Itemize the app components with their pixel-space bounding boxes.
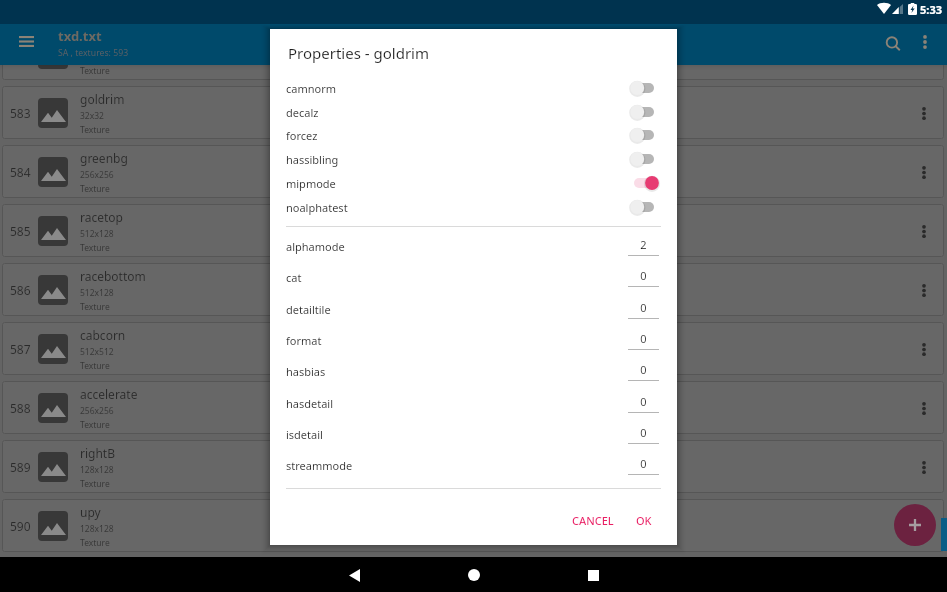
staticText: 587 xyxy=(10,341,31,357)
staticText: 0 xyxy=(628,394,659,409)
button[interactable]: Back xyxy=(337,558,371,592)
button[interactable]: 584 xyxy=(2,145,944,198)
button[interactable]: Toggle xyxy=(626,78,654,98)
staticText: 583 xyxy=(10,105,31,121)
staticText: isdetail xyxy=(286,427,323,442)
staticText: Texture xyxy=(80,65,110,77)
staticText: 585 xyxy=(10,223,31,239)
staticText: 0 xyxy=(628,331,659,346)
staticText: detailtile xyxy=(286,302,331,317)
button[interactable]: Open navigation drawer xyxy=(9,28,43,62)
staticText: 586 xyxy=(10,282,31,298)
button[interactable]: Item options xyxy=(904,447,944,487)
button[interactable]: Home xyxy=(457,558,491,592)
button[interactable]: Add xyxy=(894,504,936,546)
button[interactable]: Item options xyxy=(904,211,944,251)
button[interactable]: 586 xyxy=(2,263,944,316)
button[interactable]: Search xyxy=(873,24,914,65)
staticText: rightB xyxy=(80,445,115,461)
staticText: Texture xyxy=(80,419,110,431)
staticText: 582 xyxy=(10,46,31,62)
staticText: 584 xyxy=(10,164,31,180)
button[interactable]: mipmode xyxy=(286,171,654,195)
staticText: greenbg xyxy=(80,150,128,166)
button[interactable]: Item options xyxy=(904,93,944,133)
staticText: racebottom xyxy=(80,268,146,284)
staticText: camnorm xyxy=(286,81,337,96)
button[interactable]: forcez xyxy=(286,123,654,147)
staticText: CANCEL xyxy=(572,513,614,528)
staticText: xxx xyxy=(80,32,100,48)
staticText: 5:33 xyxy=(920,2,942,17)
staticText: 128x128 xyxy=(80,464,114,476)
button[interactable]: Toggle xyxy=(626,102,654,122)
staticText: cabcorn xyxy=(80,327,126,343)
staticText: 2 xyxy=(628,237,659,252)
staticText: 64x64 xyxy=(80,51,104,63)
button[interactable]: Toggle xyxy=(626,149,654,169)
button[interactable]: CANCEL xyxy=(562,505,624,536)
button[interactable]: 585 xyxy=(2,204,944,257)
staticText: 589 xyxy=(10,459,31,475)
button[interactable]: camnorm xyxy=(286,76,654,100)
staticText: 0 xyxy=(628,300,659,315)
button[interactable]: Item options xyxy=(904,329,944,369)
button[interactable]: noalphatest xyxy=(286,195,654,219)
staticText: 0 xyxy=(628,425,659,440)
staticText: 256x256 xyxy=(80,169,114,181)
staticText: 512x128 xyxy=(80,287,114,299)
button[interactable]: Recents xyxy=(576,558,610,592)
staticText: OK xyxy=(636,513,652,528)
staticText: 256x256 xyxy=(80,405,114,417)
button[interactable]: hassibling xyxy=(286,147,654,171)
button[interactable]: 587 xyxy=(2,322,944,375)
staticText: 588 xyxy=(10,400,31,416)
button[interactable]: 590 xyxy=(2,499,944,552)
staticText: 0 xyxy=(628,362,659,377)
staticText: upy xyxy=(80,504,101,520)
staticText: alphamode xyxy=(286,239,345,254)
staticText: decalz xyxy=(286,105,319,120)
button[interactable]: Item options xyxy=(904,388,944,428)
button[interactable]: 582 xyxy=(2,27,944,80)
staticText: hasbias xyxy=(286,364,326,379)
button[interactable]: 588 xyxy=(2,381,944,434)
button[interactable]: 589 xyxy=(2,440,944,493)
staticText: 128x128 xyxy=(80,523,114,535)
staticText: Texture xyxy=(80,537,110,549)
button[interactable]: Toggle xyxy=(626,125,654,145)
staticText: forcez xyxy=(286,128,318,143)
staticText: noalphatest xyxy=(286,200,348,215)
staticText: SA , textures: 593 xyxy=(58,47,129,59)
button[interactable]: More options xyxy=(904,21,945,62)
staticText: Texture xyxy=(80,360,110,372)
button[interactable]: Item options xyxy=(904,34,944,74)
staticText: Texture xyxy=(80,478,110,490)
button[interactable]: OK xyxy=(626,505,662,536)
staticText: Texture xyxy=(80,242,110,254)
button[interactable]: 583 xyxy=(2,86,944,139)
staticText: streammode xyxy=(286,458,353,473)
staticText: cat xyxy=(286,270,302,285)
staticText: Texture xyxy=(80,183,110,195)
staticText: mipmode xyxy=(286,176,336,191)
button[interactable]: Toggle xyxy=(626,197,654,217)
button[interactable]: Item options xyxy=(904,152,944,192)
staticText: accelerate xyxy=(80,386,138,402)
staticText: 0 xyxy=(628,456,659,471)
staticText: 512x512 xyxy=(80,346,114,358)
button[interactable]: Toggle xyxy=(626,173,654,193)
staticText: 0 xyxy=(628,268,659,283)
staticText: hasdetail xyxy=(286,396,334,411)
button[interactable]: Item options xyxy=(904,506,944,546)
staticText: racetop xyxy=(80,209,123,225)
staticText: Properties - goldrim xyxy=(288,43,429,63)
staticText: hassibling xyxy=(286,152,339,167)
staticText: txd.txt xyxy=(58,27,102,45)
staticText: 32x32 xyxy=(80,110,104,122)
button[interactable]: decalz xyxy=(286,100,654,124)
staticText: 512x128 xyxy=(80,228,114,240)
button[interactable]: Item options xyxy=(904,270,944,310)
staticText: goldrim xyxy=(80,91,125,107)
staticText: format xyxy=(286,333,322,348)
